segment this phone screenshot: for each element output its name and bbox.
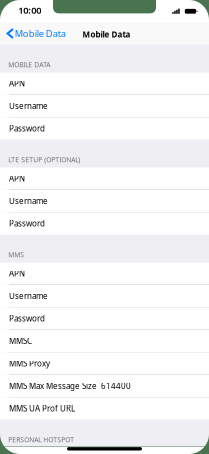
staticText: MOBILE DATA (8, 60, 50, 69)
staticText: Username (9, 101, 48, 111)
staticText: Mobile Data (82, 29, 130, 40)
staticText: MMS UA Prof URL (9, 403, 75, 414)
button[interactable]: APN (0, 262, 209, 284)
staticText: MMS (8, 250, 24, 259)
staticText: APN (9, 78, 25, 89)
staticText: Password (9, 313, 45, 324)
button[interactable]: APN (0, 72, 209, 94)
button[interactable]: Mobile Data (0, 24, 72, 43)
button[interactable]: Username (0, 190, 209, 212)
button[interactable]: Password (0, 307, 209, 329)
button[interactable]: Username (0, 285, 209, 307)
staticText: MMS Proxy (9, 358, 50, 369)
staticText: APN (9, 268, 25, 279)
staticText: MMSC (9, 336, 32, 346)
staticText: MMS Max Message Size (9, 381, 97, 391)
button[interactable]: MMSC (0, 330, 209, 352)
staticText: PERSONAL HOTSPOT (8, 435, 74, 444)
button[interactable]: MMS Max Message Size (0, 375, 209, 397)
button[interactable]: MMS Proxy (0, 352, 209, 374)
staticText: Password (9, 218, 45, 229)
button[interactable]: Username (0, 95, 209, 117)
staticText: 10:00 (18, 4, 41, 16)
button[interactable]: Password (0, 117, 209, 139)
staticText: Password (9, 123, 45, 134)
button[interactable]: Password (0, 212, 209, 234)
staticText: Username (9, 196, 48, 206)
staticText: APN (9, 173, 25, 184)
button[interactable]: MMS UA Prof URL (0, 397, 209, 419)
staticText: Username (9, 291, 48, 301)
staticText: Mobile Data (15, 27, 66, 40)
button[interactable]: APN (0, 167, 209, 189)
staticText: 614400 (97, 381, 131, 391)
staticText: LTE SETUP (OPTIONAL) (8, 155, 80, 164)
